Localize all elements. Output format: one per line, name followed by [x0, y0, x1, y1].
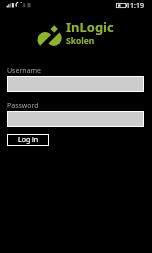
other: Status — [0, 0, 152, 11]
staticText: Log in — [18, 135, 39, 145]
staticText: Username — [7, 66, 42, 76]
staticText: Password — [7, 101, 39, 111]
button[interactable]: Log in — [7, 134, 49, 146]
staticText: Skolen — [66, 35, 95, 47]
staticText: InLogic — [66, 18, 114, 36]
staticText: 11:19 — [126, 1, 144, 11]
